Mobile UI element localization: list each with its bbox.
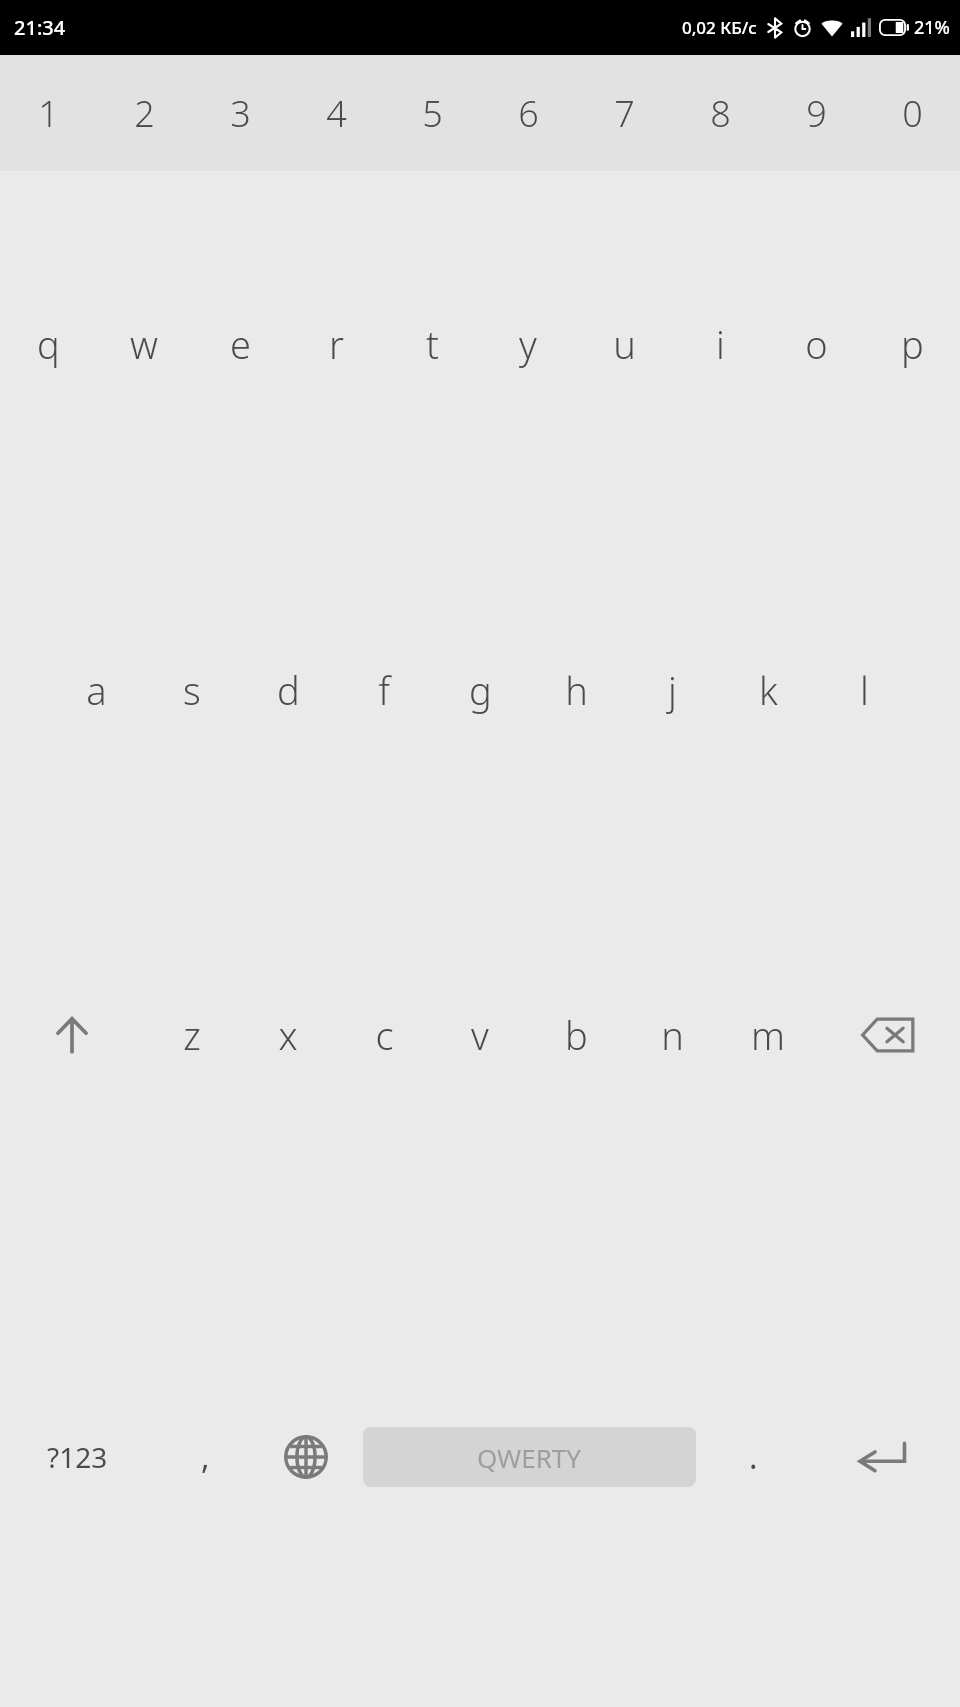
button[interactable]: 6 (480, 55, 576, 171)
button[interactable]: i (672, 171, 768, 517)
button[interactable]: Change language (255, 1207, 356, 1707)
staticText: 1 (38, 89, 59, 138)
staticText: , (201, 1435, 210, 1479)
button[interactable]: z (144, 862, 240, 1207)
button[interactable]: p (864, 171, 960, 517)
staticText: 7 (614, 89, 635, 138)
staticText: 6 (518, 89, 539, 138)
staticText: 21% (914, 15, 950, 40)
staticText: w (130, 318, 158, 370)
button[interactable]: ?123 (0, 1207, 155, 1707)
button[interactable]: l (816, 517, 912, 862)
staticText: s (183, 664, 201, 716)
button[interactable]: a (48, 517, 144, 862)
button[interactable]: n (624, 862, 720, 1207)
staticText: 5 (422, 89, 443, 138)
button[interactable]: d (240, 517, 336, 862)
staticText: d (277, 664, 300, 716)
staticText: j (668, 664, 677, 716)
button[interactable]: Enter (804, 1207, 960, 1707)
button[interactable]: m (720, 862, 816, 1207)
button[interactable]: 8 (672, 55, 768, 171)
staticText: f (378, 664, 390, 716)
button[interactable]: o (768, 171, 864, 517)
button[interactable]: y (480, 171, 576, 517)
staticText: q (37, 318, 60, 370)
button[interactable]: Backspace (816, 862, 960, 1207)
staticText: ?123 (47, 1438, 108, 1476)
button[interactable]: f (336, 517, 432, 862)
button[interactable]: u (576, 171, 672, 517)
staticText: 3 (230, 89, 251, 138)
staticText: k (759, 664, 778, 716)
staticText: i (716, 318, 725, 370)
button[interactable]: 0 (864, 55, 960, 171)
staticText: g (469, 664, 492, 716)
button[interactable]: 9 (768, 55, 864, 171)
button[interactable]: h (528, 517, 624, 862)
staticText: QWERTY (477, 1440, 582, 1475)
staticText: 2 (134, 89, 155, 138)
button[interactable]: 3 (192, 55, 288, 171)
staticText: t (426, 318, 439, 370)
staticText: h (565, 664, 588, 716)
button[interactable]: QWERTY (363, 1427, 696, 1487)
staticText: 21:34 (14, 14, 66, 41)
staticText: 0 (902, 89, 923, 138)
staticText: v (471, 1009, 489, 1061)
staticText: e (230, 318, 251, 370)
staticText: 0,02 КБ/с (682, 16, 757, 39)
staticText: x (278, 1009, 298, 1061)
button[interactable]: 4 (288, 55, 384, 171)
staticText: a (86, 664, 107, 716)
button[interactable]: Shift (0, 862, 144, 1207)
button[interactable]: x (240, 862, 336, 1207)
button[interactable]: 2 (96, 55, 192, 171)
button[interactable]: s (144, 517, 240, 862)
button[interactable]: t (384, 171, 480, 517)
button[interactable]: v (432, 862, 528, 1207)
button[interactable]: , (155, 1207, 255, 1707)
staticText: 8 (710, 89, 731, 138)
staticText: m (751, 1009, 785, 1061)
button[interactable]: j (624, 517, 720, 862)
staticText: z (183, 1009, 201, 1061)
staticText: u (613, 318, 636, 370)
button[interactable]: w (96, 171, 192, 517)
button[interactable]: 1 (0, 55, 96, 171)
staticText: o (805, 318, 828, 370)
button[interactable]: c (336, 862, 432, 1207)
staticText: . (749, 1435, 758, 1479)
staticText: 4 (326, 89, 347, 138)
button[interactable]: 7 (576, 55, 672, 171)
button[interactable]: r (288, 171, 384, 517)
staticText: l (860, 664, 869, 716)
staticText: b (565, 1009, 588, 1061)
button[interactable]: q (0, 171, 96, 517)
staticText: r (329, 318, 344, 370)
staticText: 9 (806, 89, 827, 138)
staticText: y (519, 318, 537, 370)
staticText: n (661, 1009, 684, 1061)
staticText: c (375, 1009, 394, 1061)
button[interactable]: k (720, 517, 816, 862)
button[interactable]: 5 (384, 55, 480, 171)
button[interactable]: e (192, 171, 288, 517)
button[interactable]: b (528, 862, 624, 1207)
button[interactable]: g (432, 517, 528, 862)
staticText: p (901, 318, 924, 370)
